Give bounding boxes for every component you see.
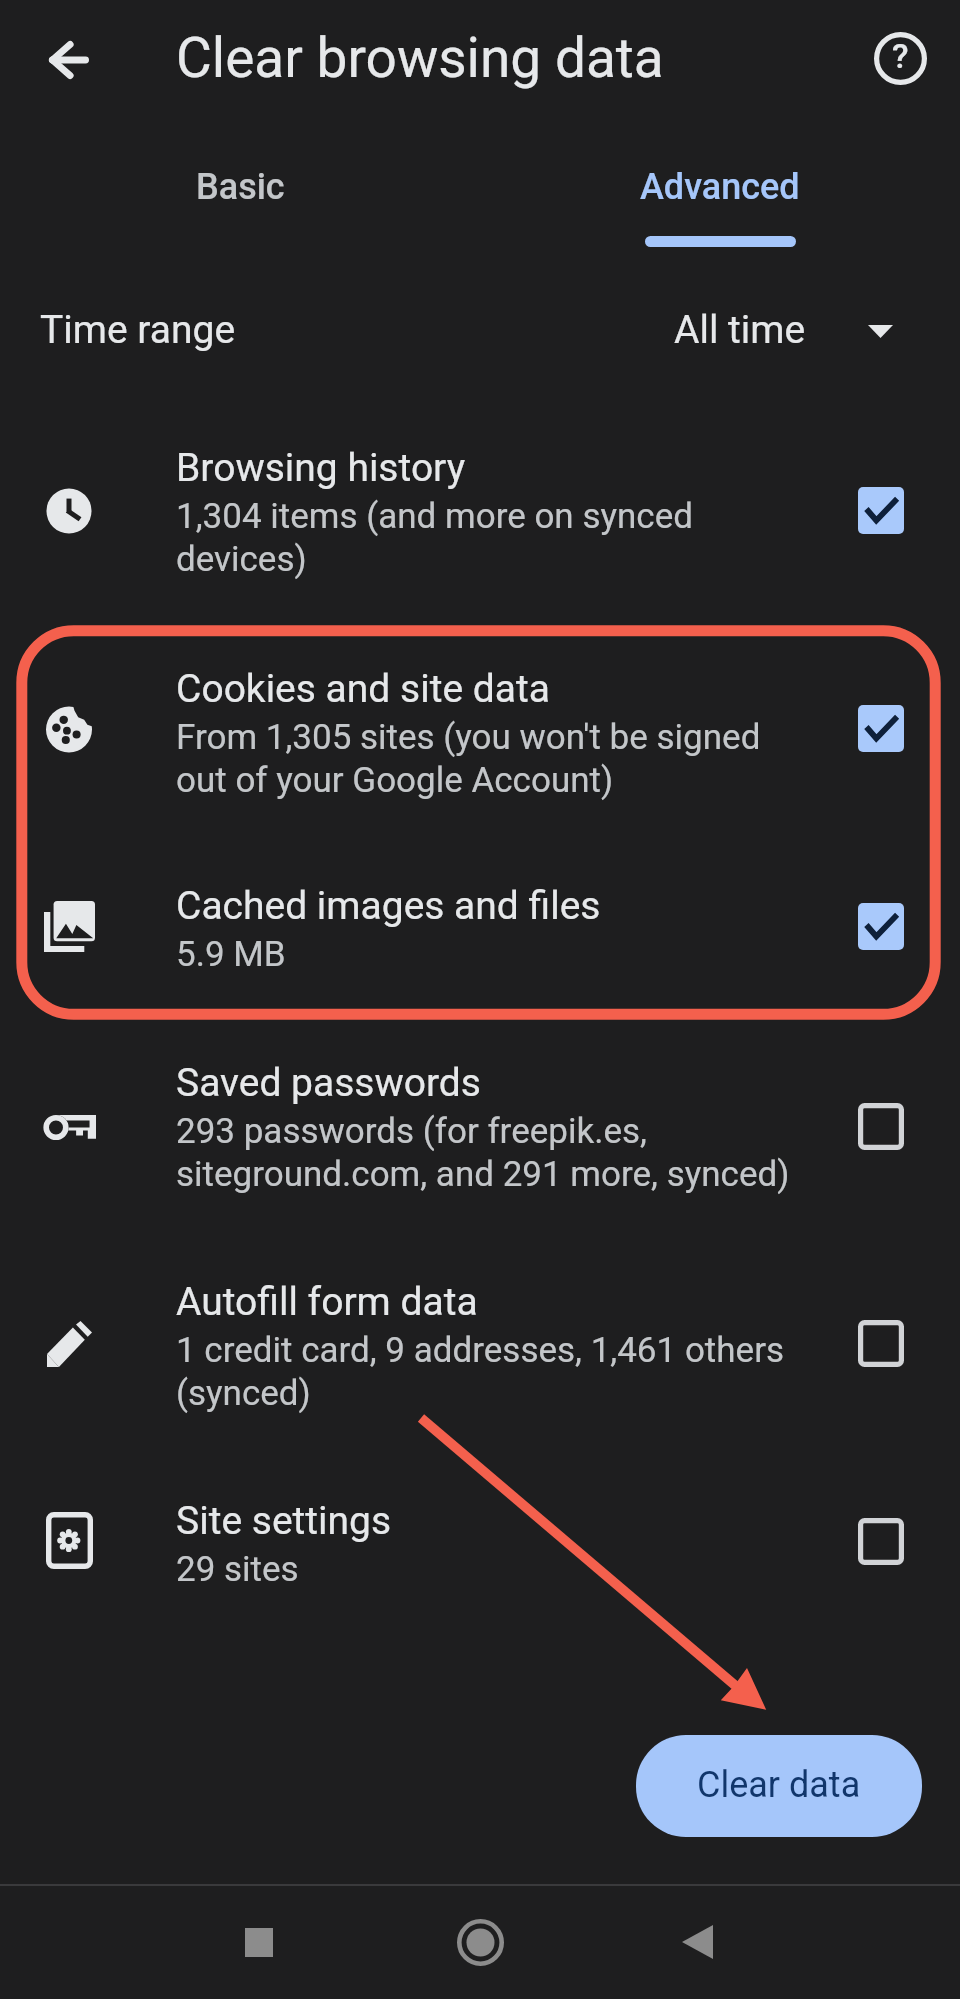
button[interactable]: Back	[652, 1897, 742, 1987]
staticText: Autofill form data	[176, 1279, 478, 1325]
button[interactable]: Help	[854, 12, 946, 104]
button[interactable]: Home	[435, 1897, 525, 1987]
staticText: 1,304 items (and more on synced	[176, 496, 693, 537]
button[interactable]: Unchecked	[846, 1308, 916, 1378]
button[interactable]	[0, 1027, 960, 1189]
staticText: out of your Google Account)	[176, 760, 614, 801]
button[interactable]: Clear data	[636, 1735, 922, 1837]
button[interactable]: Checked	[846, 475, 916, 545]
staticText: Clear browsing data	[176, 26, 664, 90]
button[interactable]: Unchecked	[846, 1506, 916, 1576]
staticText: 1 credit card, 9 addresses, 1,461 others	[176, 1330, 785, 1371]
button[interactable]	[0, 1465, 960, 1584]
staticText: Clear data	[697, 1764, 861, 1806]
staticText: Browsing history	[176, 445, 466, 491]
button[interactable]: Time range	[0, 284, 960, 376]
button[interactable]: Unchecked	[846, 1091, 916, 1161]
staticText: Basic	[196, 166, 285, 208]
staticText: Cookies and site data	[176, 666, 550, 712]
button[interactable]	[0, 633, 960, 795]
button[interactable]: Basic	[0, 130, 480, 248]
staticText: (synced)	[176, 1373, 311, 1414]
staticText: 5.9 MB	[176, 934, 286, 975]
staticText: Site settings	[176, 1498, 392, 1544]
button[interactable]: Back	[23, 14, 115, 106]
button[interactable]: Advanced	[480, 130, 960, 248]
button[interactable]: Recent apps	[214, 1897, 304, 1987]
staticText: From 1,305 sites (you won't be signed	[176, 717, 761, 758]
staticText: All time	[674, 307, 806, 353]
button[interactable]	[0, 412, 960, 574]
staticText: ?	[892, 36, 909, 76]
staticText: devices)	[176, 539, 307, 580]
button[interactable]	[0, 1246, 960, 1408]
staticText: Saved passwords	[176, 1060, 481, 1106]
button[interactable]: Checked	[846, 891, 916, 961]
staticText: Time range	[40, 307, 236, 353]
staticText: Cached images and files	[176, 883, 601, 929]
staticText: 29 sites	[176, 1549, 299, 1590]
button[interactable]: Checked	[846, 693, 916, 763]
staticText: siteground.com, and 291 more, synced)	[176, 1154, 790, 1195]
staticText: 293 passwords (for freepik.es,	[176, 1111, 647, 1152]
staticText: Advanced	[640, 166, 800, 208]
button[interactable]	[0, 850, 960, 969]
